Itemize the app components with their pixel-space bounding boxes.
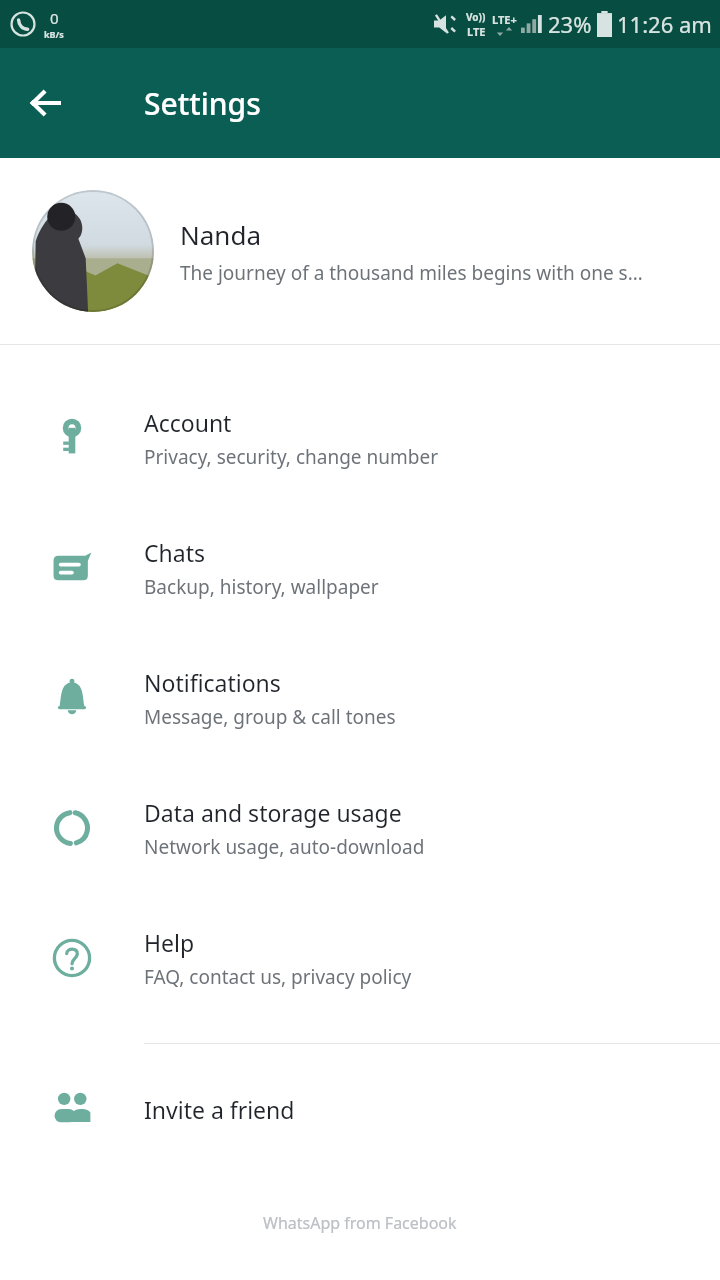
staticText: Settings xyxy=(144,83,261,124)
staticText: Nanda xyxy=(180,217,261,252)
staticText: Privacy, security, change number xyxy=(144,444,438,470)
staticText: Network usage, auto-download xyxy=(144,834,425,860)
staticText: 0 xyxy=(50,8,59,28)
staticText: LTE xyxy=(467,24,486,39)
staticText: Data and storage usage xyxy=(144,797,402,828)
staticText: kB/s xyxy=(44,28,64,40)
staticText: Help xyxy=(144,927,195,958)
button[interactable]: Notifications xyxy=(0,633,720,763)
button[interactable]: Help xyxy=(0,893,720,1023)
staticText: Chats xyxy=(144,537,205,568)
staticText: Account xyxy=(144,407,232,438)
staticText: Vo)) xyxy=(466,10,486,24)
button[interactable]: Chats xyxy=(0,503,720,633)
button[interactable]: Back xyxy=(18,75,74,131)
staticText: 11:26 am xyxy=(617,9,712,39)
staticText: WhatsApp from Facebook xyxy=(263,1212,457,1234)
staticText: LTE+ xyxy=(492,12,517,27)
button[interactable]: Data and storage usage xyxy=(0,763,720,893)
staticText: Message, group & call tones xyxy=(144,704,396,730)
staticText: FAQ, contact us, privacy policy xyxy=(144,964,412,990)
staticText: Notifications xyxy=(144,667,281,698)
button[interactable]: Nanda xyxy=(0,158,720,344)
staticText: The journey of a thousand miles begins w… xyxy=(180,260,643,286)
staticText: Backup, history, wallpaper xyxy=(144,574,379,600)
staticText: Invite a friend xyxy=(144,1094,295,1125)
button[interactable]: Account xyxy=(0,373,720,503)
button[interactable]: Invite a friend xyxy=(0,1044,720,1174)
staticText: 23% xyxy=(548,9,592,39)
